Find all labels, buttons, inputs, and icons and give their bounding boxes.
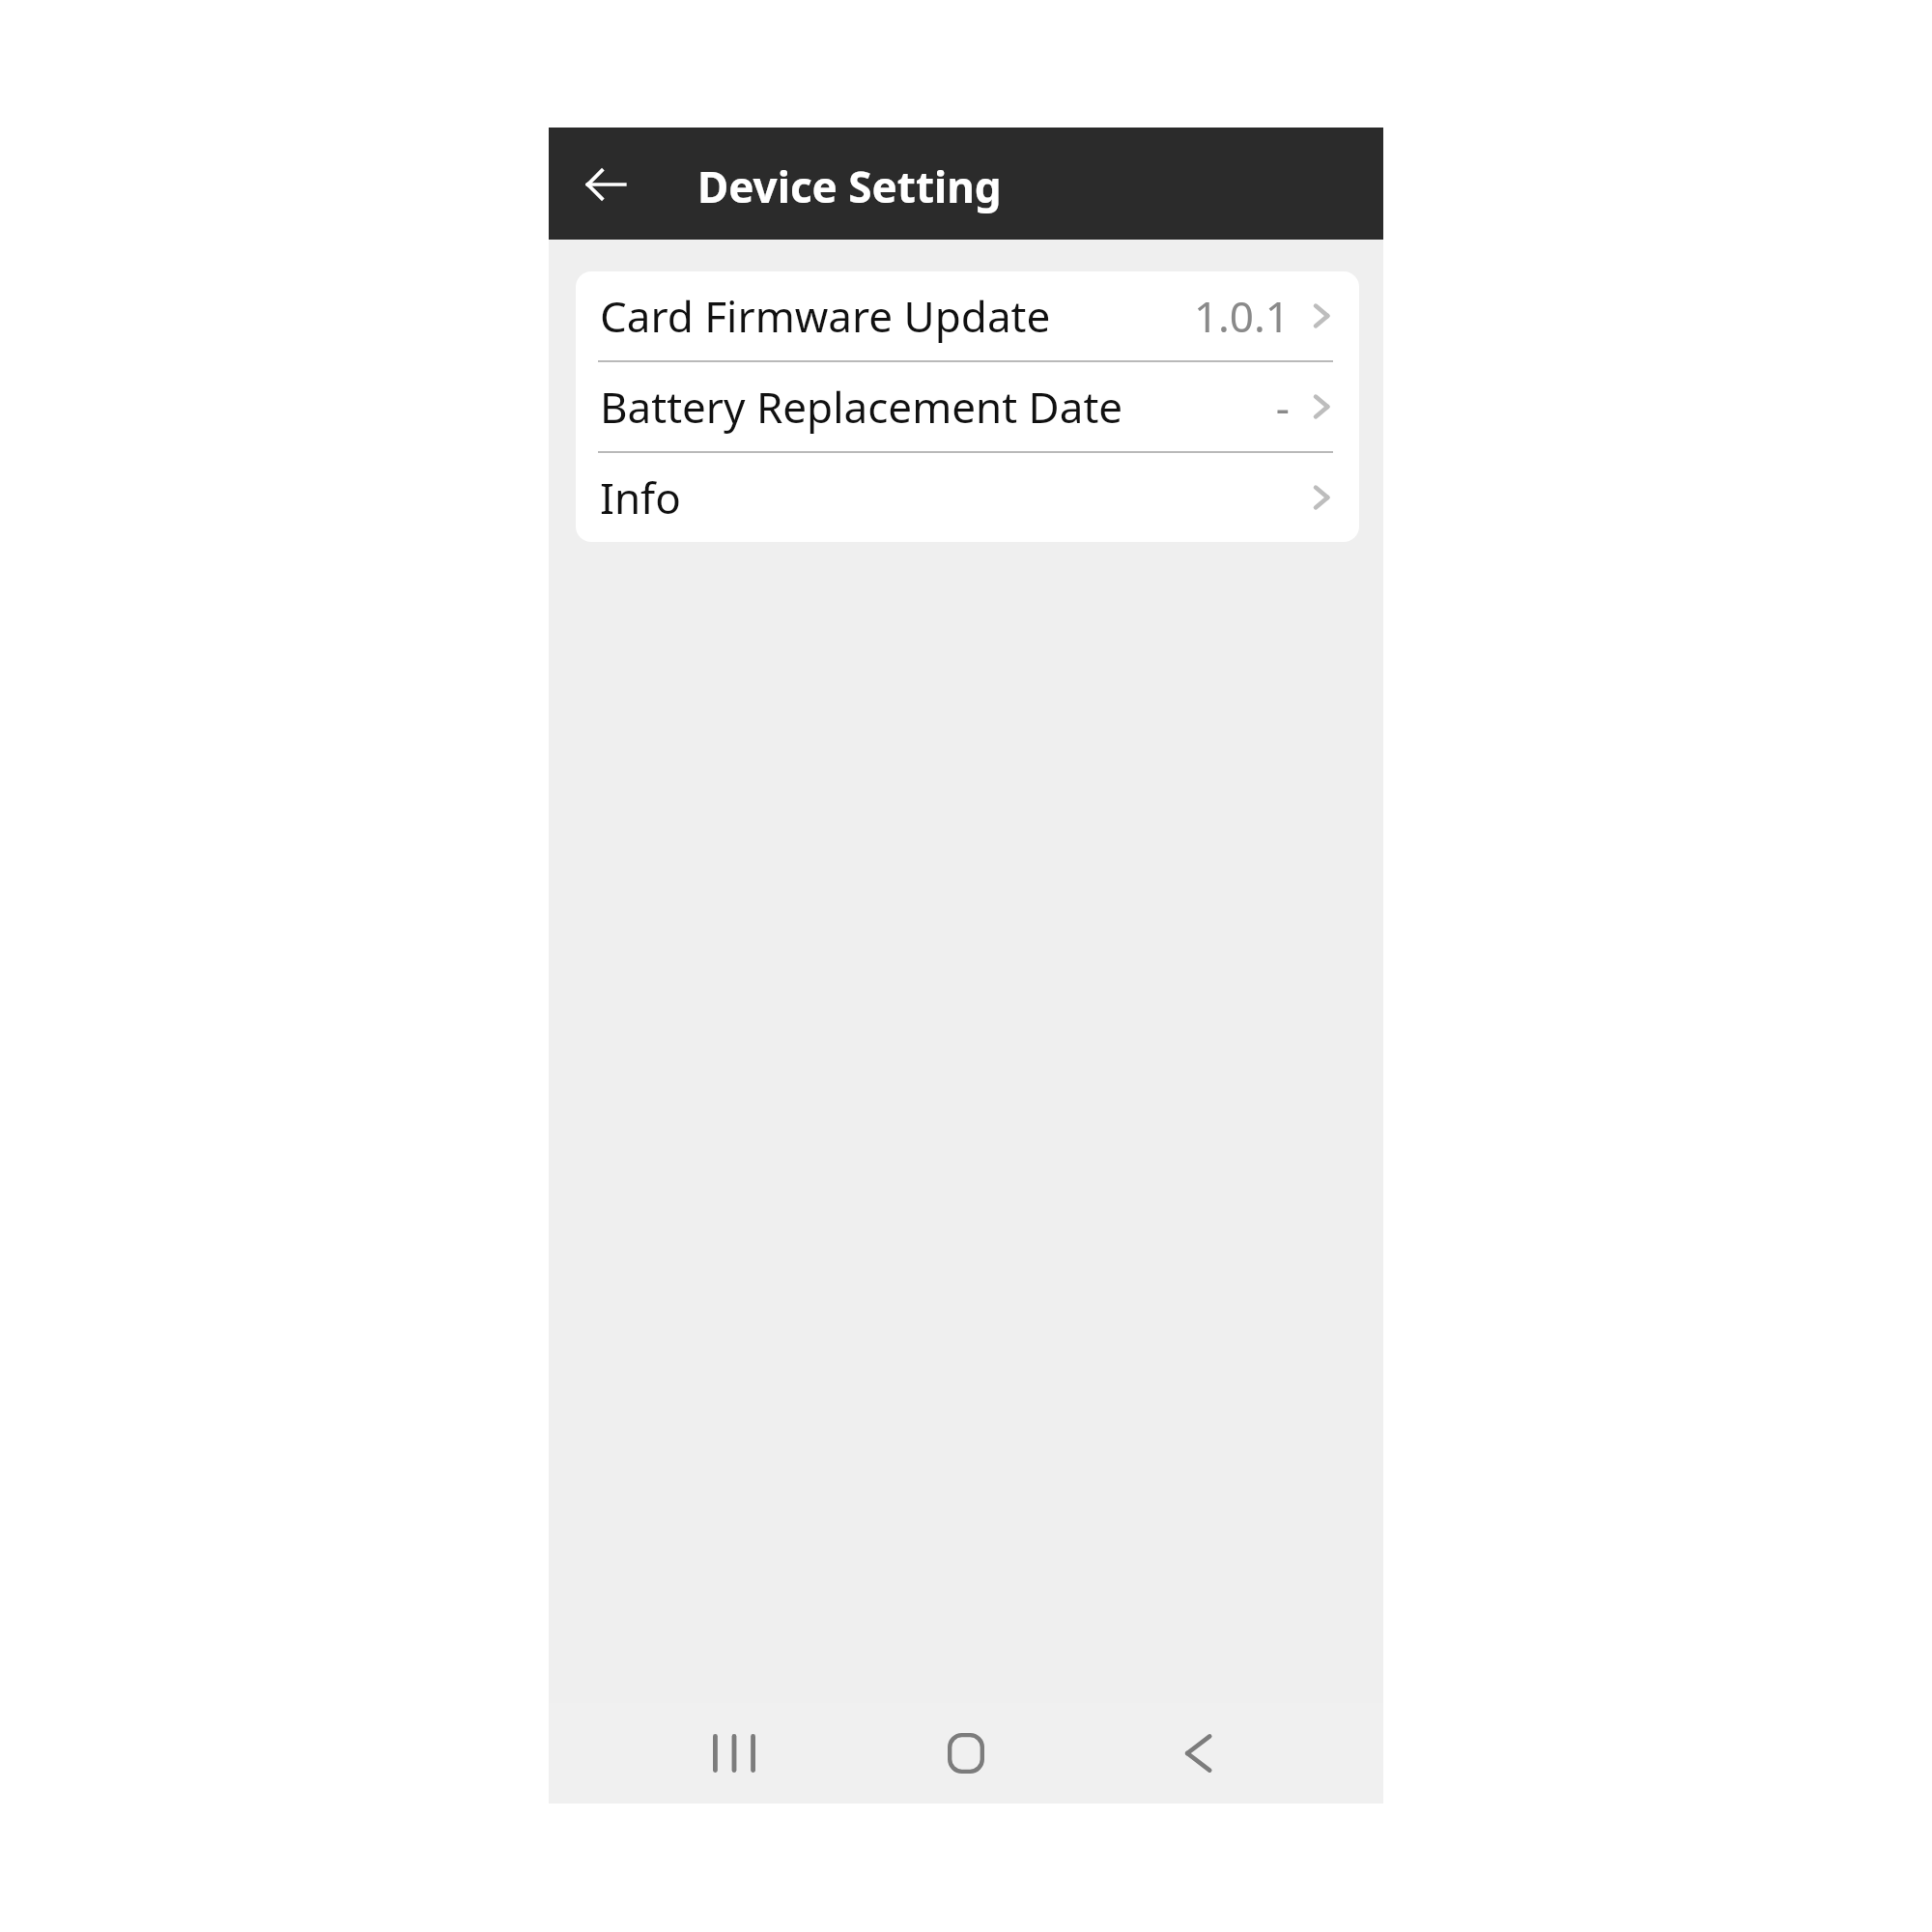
button[interactable]: Home (920, 1707, 1012, 1800)
staticText: Battery Replacement Date (600, 378, 1123, 436)
staticText: 1.0.1 (1193, 287, 1290, 345)
staticText: Card Firmware Update (600, 287, 1051, 345)
staticText: Info (600, 469, 681, 526)
staticText: Device Setting (697, 157, 1002, 215)
button[interactable]: Back (1151, 1707, 1244, 1800)
button[interactable]: Recent apps (688, 1707, 781, 1800)
button[interactable]: Info (576, 453, 1359, 542)
button[interactable]: Battery Replacement Date (576, 362, 1359, 451)
staticText: - (1275, 378, 1290, 436)
button[interactable]: Back (579, 157, 633, 212)
button[interactable]: Card Firmware Update (576, 271, 1359, 360)
